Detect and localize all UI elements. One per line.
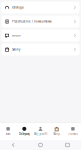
staticText: Sklep <box>53 132 60 136</box>
button[interactable]: Obsługa <box>1 1 79 13</box>
button[interactable]: Mój profil <box>32 123 49 139</box>
button[interactable]: Home <box>27 143 54 147</box>
button[interactable]: Odkrywaj <box>16 123 32 139</box>
staticText: Start <box>6 132 11 136</box>
staticText: Odkrywaj <box>19 132 30 136</box>
button[interactable]: Forum <box>1 29 79 41</box>
button[interactable]: Back <box>0 143 27 147</box>
staticText: Mój profil <box>33 132 47 136</box>
staticText: Przedłużenie / nowa umowa <box>12 20 51 23</box>
button[interactable]: Start <box>0 123 16 139</box>
staticText: Forum <box>12 34 20 37</box>
button[interactable]: Pomoc <box>65 123 81 139</box>
button[interactable]: Sklep <box>49 123 65 139</box>
staticText: Pomoc <box>68 132 77 136</box>
staticText: Salony <box>12 48 20 51</box>
button[interactable]: Recent apps <box>54 143 81 147</box>
staticText: Obsługa <box>12 6 23 9</box>
button[interactable]: Przedłużenie / nowa umowa <box>1 15 79 27</box>
button[interactable]: Salony <box>1 43 79 55</box>
